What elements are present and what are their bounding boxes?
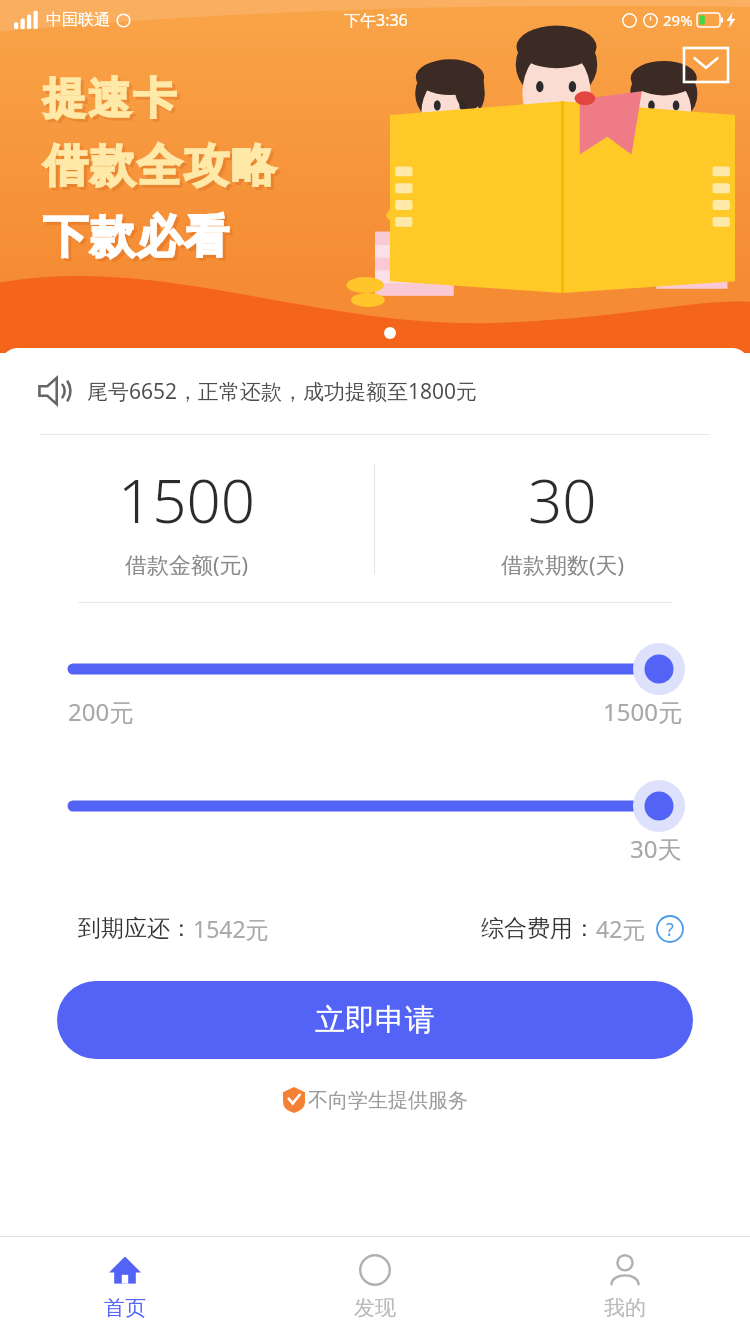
staticText: 尾号6652，正常还款，成功提额至1800元: [87, 377, 478, 406]
staticText: 借款全攻略: [45, 141, 280, 198]
staticText: 综合费用：: [481, 914, 596, 943]
staticText: 下款必看: [45, 212, 233, 269]
staticText: 到期应还：: [78, 914, 193, 943]
staticText: 中国联通: [46, 10, 110, 30]
staticText: 30天: [630, 832, 682, 865]
button[interactable]: 发现: [250, 1237, 500, 1334]
button[interactable]: 费用说明: [656, 915, 684, 943]
staticText: 29%: [663, 10, 693, 30]
staticText: 借款全攻略: [42, 138, 277, 195]
button[interactable]: 1500: [0, 459, 374, 579]
staticText: 200元: [68, 695, 134, 728]
staticText: 1500元: [603, 695, 682, 728]
button[interactable]: 首页: [0, 1237, 250, 1334]
staticText: 立即申请: [315, 1001, 435, 1039]
staticText: 提速卡: [45, 75, 180, 129]
staticText: ?: [666, 917, 674, 942]
staticText: 1500: [118, 459, 256, 541]
staticText: 提速卡: [42, 72, 177, 126]
staticText: 借款期数(天): [501, 549, 625, 579]
staticText: 30: [528, 459, 597, 541]
staticText: 1542元: [193, 913, 269, 944]
staticText: 发现: [354, 1295, 396, 1321]
button[interactable]: 我的: [500, 1237, 750, 1334]
staticText: 我的: [604, 1295, 646, 1321]
button[interactable]: [70, 643, 680, 695]
button[interactable]: 消息: [684, 48, 728, 82]
staticText: 下款必看: [42, 209, 230, 266]
staticText: 42元: [596, 913, 646, 944]
staticText: 不向学生提供服务: [308, 1088, 468, 1113]
button[interactable]: 尾号6652，正常还款，成功提额至1800元: [38, 348, 750, 434]
button[interactable]: [70, 780, 680, 832]
staticText: 下午3:36: [344, 9, 408, 31]
button[interactable]: 30: [375, 459, 750, 579]
staticText: 借款金额(元): [125, 549, 249, 579]
button[interactable]: 立即申请: [57, 981, 693, 1059]
staticText: 首页: [104, 1295, 146, 1321]
